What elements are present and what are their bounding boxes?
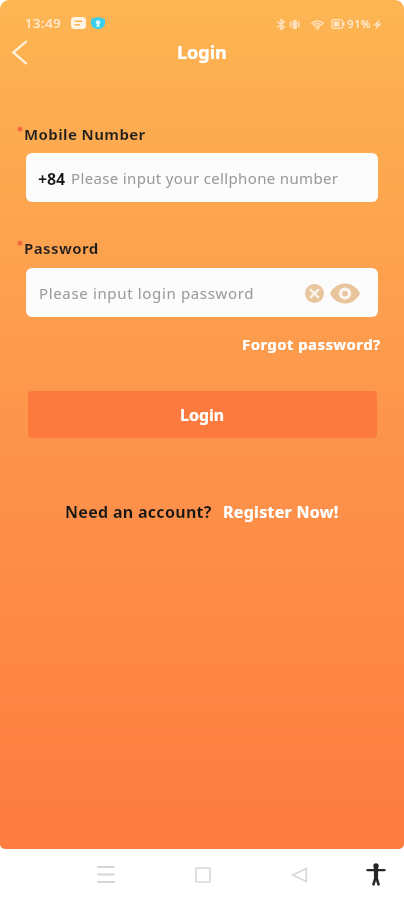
staticText: Need an account? xyxy=(65,501,212,523)
button[interactable]: Back xyxy=(0,30,41,74)
button[interactable]: Recent apps xyxy=(84,849,128,900)
staticText: Password xyxy=(24,238,99,258)
staticText: 13:49 xyxy=(25,14,62,32)
button[interactable]: Back xyxy=(277,849,321,900)
staticText: Register Now! xyxy=(223,501,339,523)
button[interactable]: Register Now! xyxy=(223,501,339,523)
staticText: Please input your cellphone number xyxy=(71,168,339,188)
staticText: Mobile Number xyxy=(24,124,146,144)
button[interactable]: Accessibility xyxy=(354,849,398,900)
staticText: +84 xyxy=(38,168,65,190)
staticText: Please input login password xyxy=(39,283,255,303)
button[interactable]: Home xyxy=(181,849,225,900)
button[interactable]: +84 xyxy=(26,153,378,202)
button[interactable]: Please input login password xyxy=(26,268,378,317)
staticText: Forgot password? xyxy=(242,334,381,354)
button[interactable]: Login xyxy=(28,391,377,438)
staticText: Login xyxy=(180,404,225,426)
button[interactable]: Forgot password? xyxy=(242,334,381,354)
button[interactable]: Clear text xyxy=(301,280,327,306)
button[interactable]: Show password xyxy=(329,280,360,306)
staticText: 91% xyxy=(347,16,371,32)
staticText: Login xyxy=(177,40,227,65)
